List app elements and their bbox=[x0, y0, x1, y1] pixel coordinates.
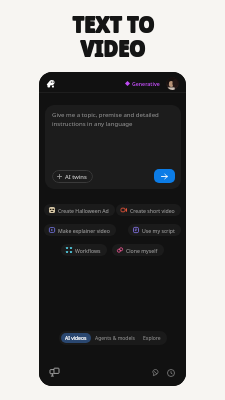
button[interactable]: Agents & models bbox=[91, 333, 139, 343]
staticText: TEXT TO bbox=[72, 8, 155, 39]
staticText: Create Halloween Ad bbox=[58, 207, 109, 214]
button[interactable]: Create short video bbox=[116, 204, 181, 216]
button[interactable]: History bbox=[165, 367, 176, 378]
staticText: Explore bbox=[143, 335, 161, 342]
staticText: Generative bbox=[132, 80, 160, 87]
staticText: TEXT TO bbox=[72, 9, 155, 40]
staticText: VIDEO bbox=[81, 32, 146, 63]
staticText: TEXT TO bbox=[72, 8, 154, 39]
staticText: Agents & models bbox=[95, 335, 135, 342]
button[interactable]: Use my script bbox=[128, 224, 181, 236]
staticText: Workflows bbox=[75, 247, 101, 254]
button[interactable]: Profile bbox=[166, 77, 179, 90]
button[interactable]: Make explainer video bbox=[44, 224, 116, 236]
button[interactable]: Generative bbox=[123, 79, 162, 88]
button[interactable]: Create Halloween Ad bbox=[44, 204, 115, 216]
staticText: Create short video bbox=[130, 207, 175, 214]
staticText: AI videos bbox=[65, 335, 87, 342]
button[interactable]: Workflows bbox=[61, 244, 107, 256]
button[interactable]: Explore bbox=[139, 333, 165, 343]
staticText: AI twins bbox=[65, 173, 87, 181]
staticText: TEXT TO bbox=[72, 9, 154, 40]
button[interactable]: Give me a topic, premise and detailed in… bbox=[45, 105, 181, 189]
button[interactable]: HeyGen logo bbox=[46, 79, 55, 88]
staticText: VIDEO bbox=[81, 33, 146, 64]
staticText: Give me a topic, premise and detailed in… bbox=[52, 111, 159, 127]
button[interactable]: Clone myself bbox=[112, 244, 164, 256]
button[interactable]: Screens bbox=[48, 366, 60, 378]
staticText: Clone myself bbox=[126, 247, 158, 254]
button[interactable]: Chat bbox=[150, 367, 161, 378]
button[interactable]: AI videos bbox=[61, 333, 91, 343]
staticText: Make explainer video bbox=[58, 227, 110, 234]
button[interactable]: Send bbox=[154, 169, 175, 183]
button[interactable]: AI twins bbox=[52, 170, 93, 183]
staticText: VIDEO bbox=[80, 33, 145, 64]
staticText: VIDEO bbox=[80, 32, 145, 63]
staticText: Use my script bbox=[142, 227, 175, 234]
